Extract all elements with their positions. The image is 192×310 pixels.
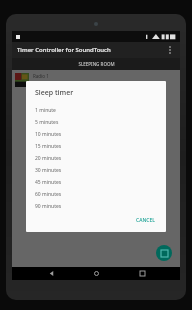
staticText: 5 minutes [35,119,59,126]
staticText: Timer Controller for SoundTouch [17,46,111,54]
button[interactable]: 30 minutes [26,164,166,176]
button[interactable]: 5 minutes [26,116,166,128]
staticText: 45 minutes [35,179,62,186]
staticText: Radio 1 [33,73,49,79]
button[interactable]: 45 minutes [26,176,166,188]
button[interactable]: More options [165,45,175,55]
button[interactable]: SLEEPING ROOM [12,58,180,70]
button[interactable]: 90 minutes [26,200,166,212]
button[interactable]: 15 minutes [26,140,166,152]
button[interactable]: Add timer [156,245,172,261]
staticText: 30 minutes [35,167,62,174]
button[interactable]: 60 minutes [26,188,166,200]
button[interactable]: 1 minute [26,104,166,116]
button[interactable]: Home [89,267,103,280]
button[interactable]: CANCEL [131,214,160,227]
staticText: CANCEL [136,217,155,224]
staticText: 90 minutes [35,203,62,210]
staticText: 1 minute [35,107,56,114]
staticText: 20 minutes [35,155,62,162]
button[interactable]: 10 minutes [26,128,166,140]
staticText: 15 minutes [35,143,62,150]
staticText: SLEEPING ROOM [78,61,115,67]
staticText: 60 minutes [35,191,62,198]
button[interactable]: Recent apps [135,267,149,280]
staticText: 10 minutes [35,131,62,138]
button[interactable]: 20 minutes [26,152,166,164]
staticText: Sleep timer [35,88,74,98]
button[interactable]: Back [44,267,58,280]
